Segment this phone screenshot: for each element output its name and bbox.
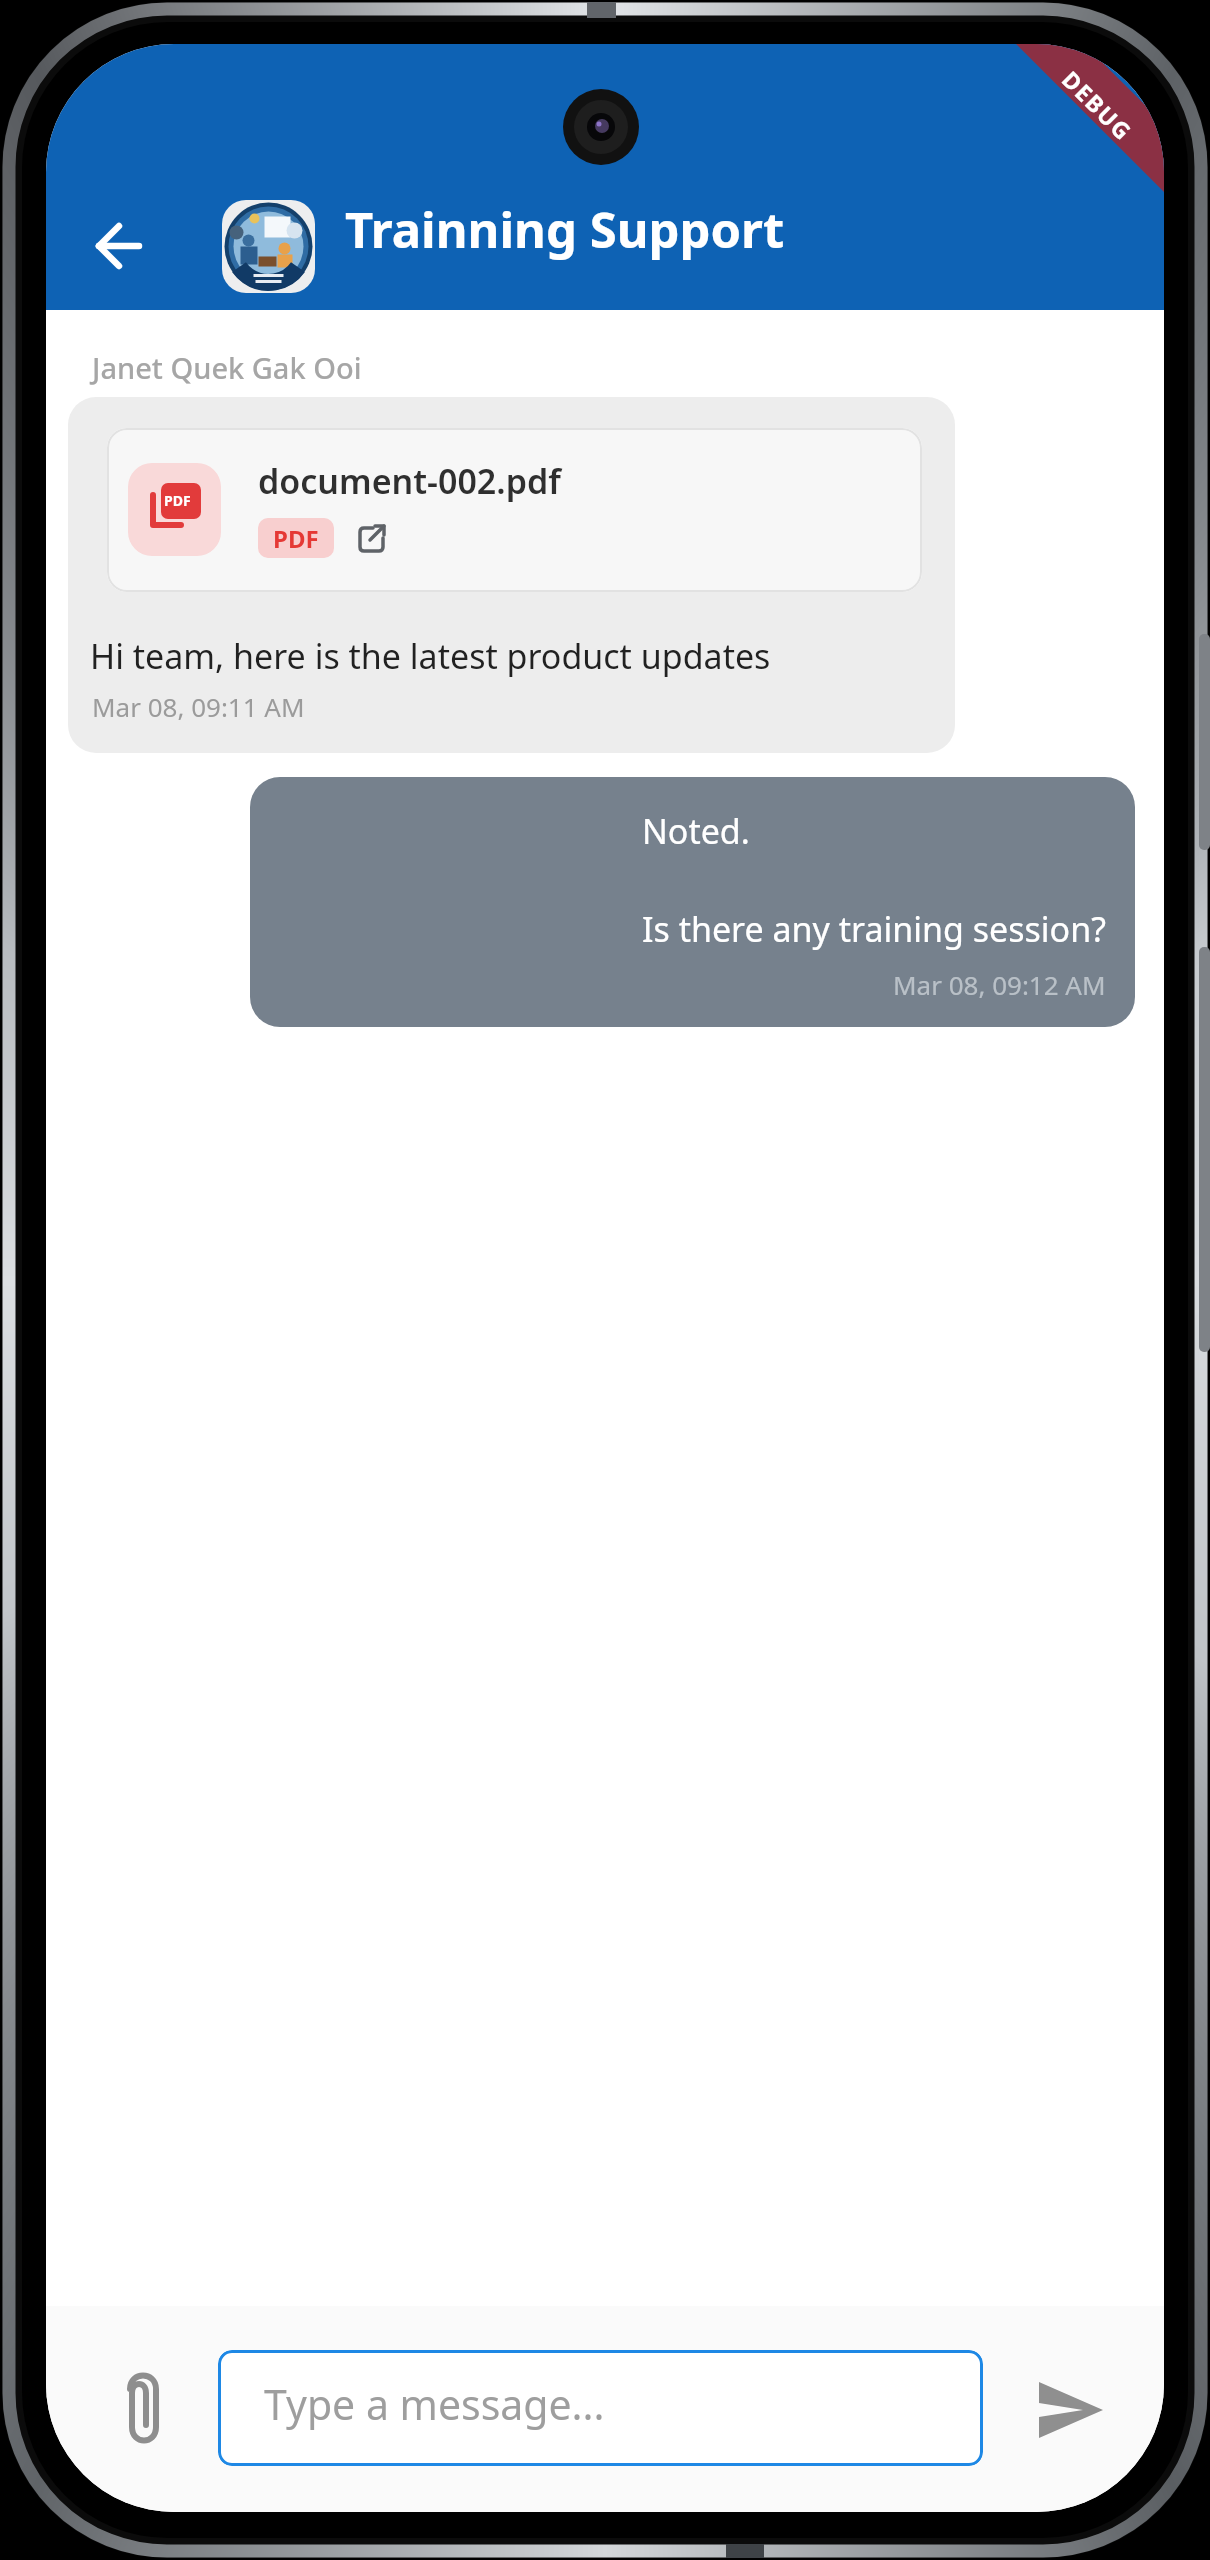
button[interactable] bbox=[222, 200, 315, 293]
staticText: Mar 08, 09:11 AM bbox=[92, 689, 305, 724]
staticText: document-002.pdf bbox=[258, 458, 561, 504]
staticText: Mar 08, 09:12 AM bbox=[893, 967, 1106, 1002]
staticText: DEBUG bbox=[1056, 63, 1139, 147]
staticText: Hi team, here is the latest product upda… bbox=[90, 633, 771, 679]
button[interactable] bbox=[74, 202, 164, 290]
staticText: Janet Quek Gak Ooi bbox=[92, 348, 362, 387]
staticText: PDF bbox=[273, 522, 319, 555]
button[interactable] bbox=[355, 522, 389, 556]
staticText: Trainning Support bbox=[345, 196, 785, 263]
button[interactable]: PDF bbox=[107, 428, 922, 592]
button[interactable] bbox=[1021, 2370, 1121, 2450]
button[interactable]: Type a message... bbox=[218, 2350, 983, 2466]
staticText: PDF bbox=[164, 491, 191, 510]
staticText: Type a message... bbox=[264, 2376, 605, 2432]
staticText: Noted. Is there any training session? bbox=[642, 808, 1106, 952]
button[interactable] bbox=[106, 2364, 180, 2454]
